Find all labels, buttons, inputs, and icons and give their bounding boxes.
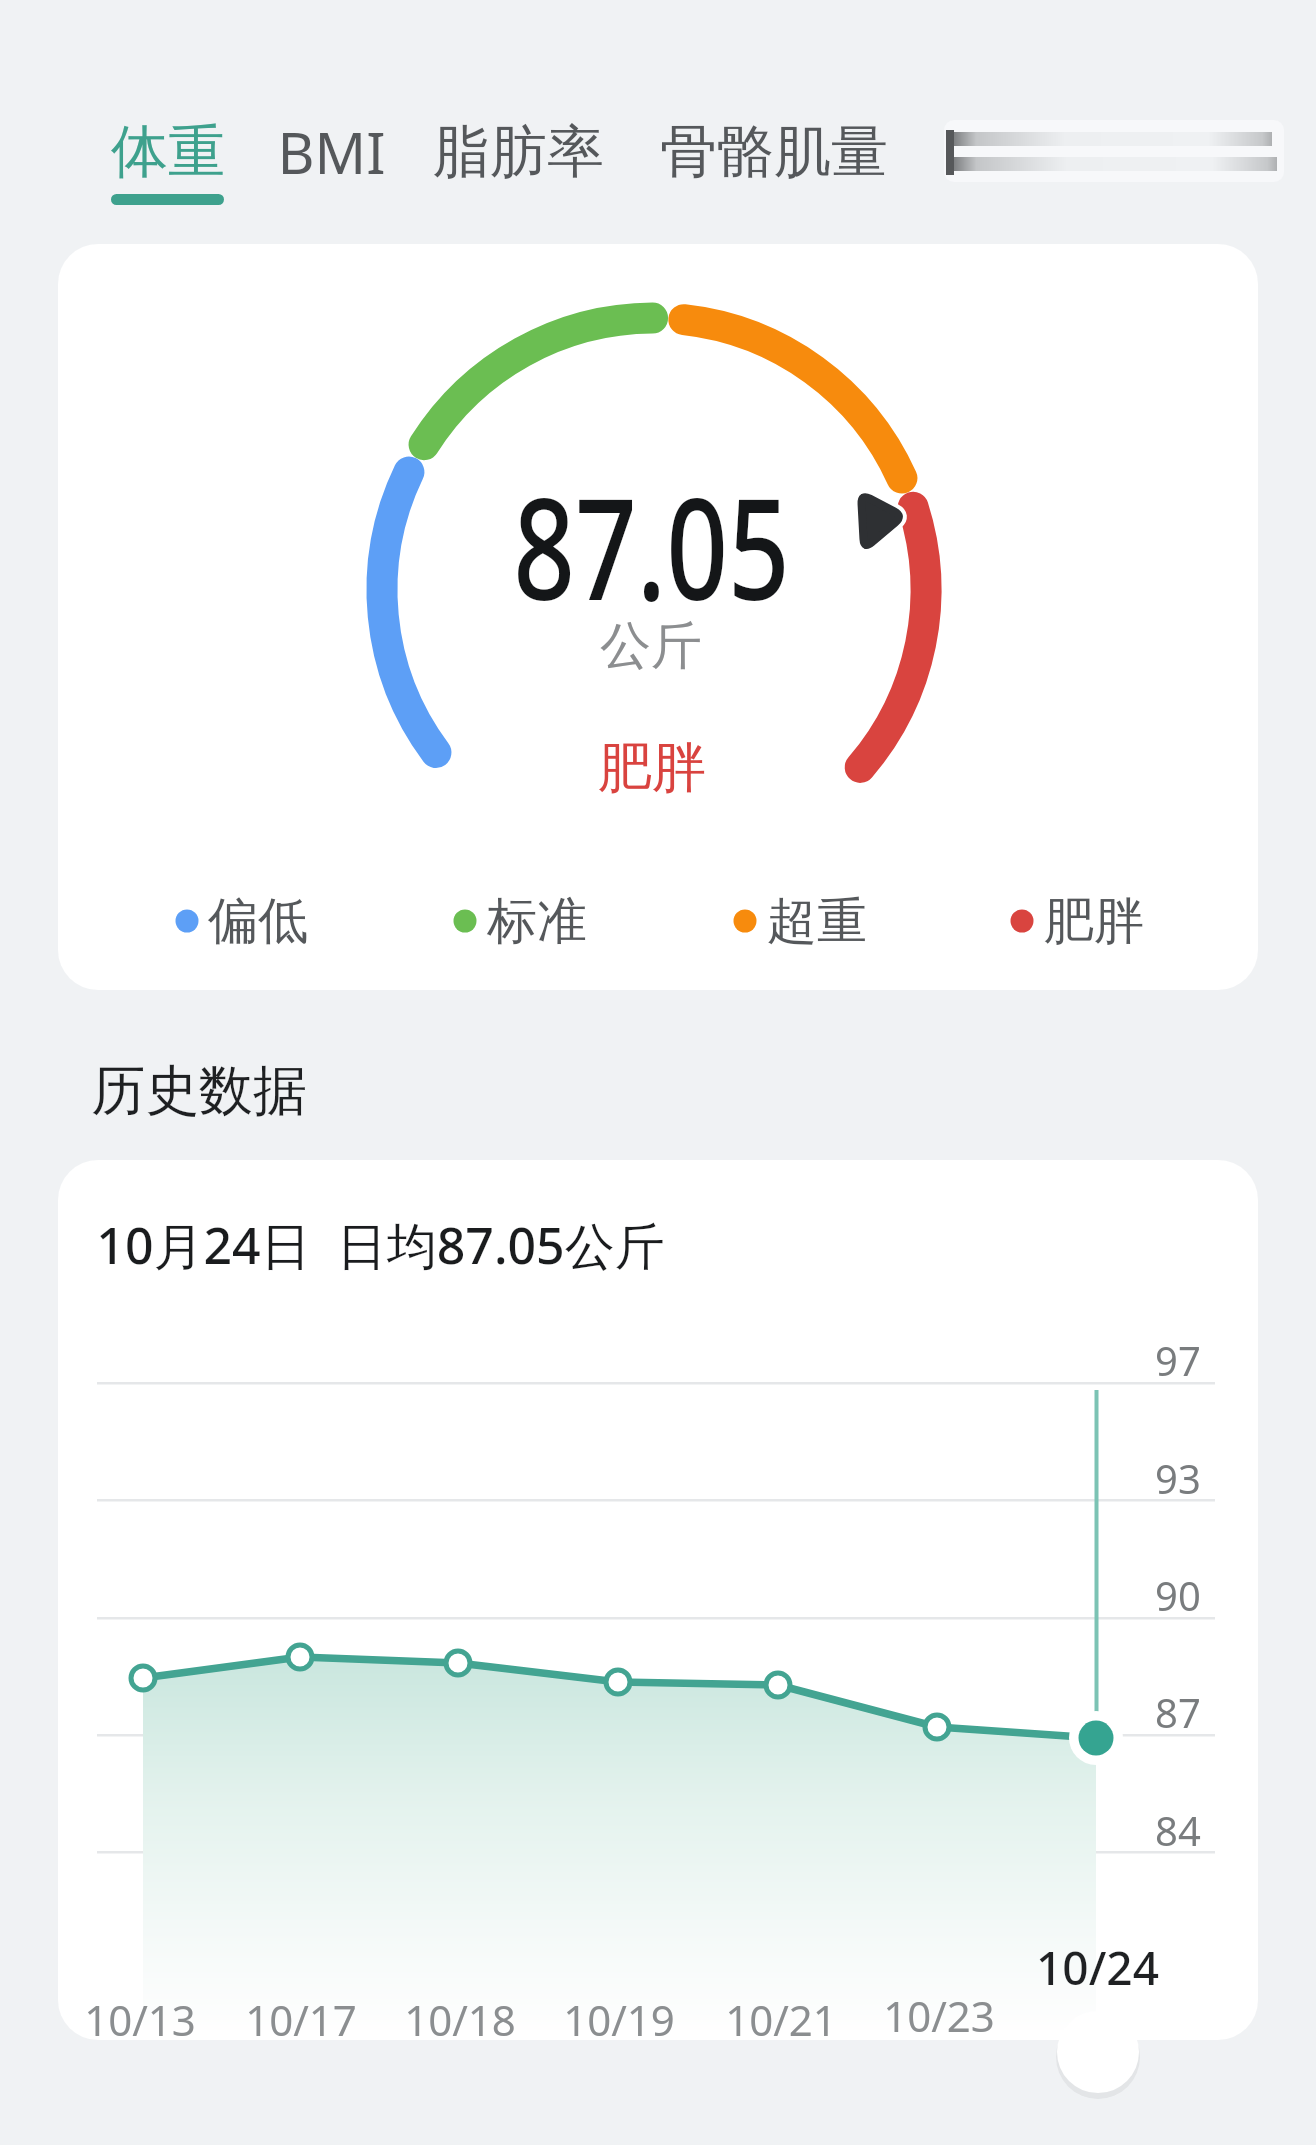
staticText: 10/17 (245, 1991, 357, 2048)
button[interactable]: 骨骼肌量 (633, 109, 914, 195)
button[interactable]: BMI (222, 109, 440, 195)
staticText: 87 (1155, 1685, 1201, 1739)
staticText: 历史数据 (91, 1057, 307, 1125)
staticText: 10/21 (725, 1991, 837, 2048)
staticText: 90 (1155, 1568, 1201, 1622)
staticText: 84 (1155, 1803, 1201, 1857)
button[interactable]: 脂肪率 (409, 109, 627, 195)
staticText: 偏低 (208, 890, 308, 953)
button[interactable]: 体重 (90, 109, 245, 195)
staticText: 超重 (767, 890, 867, 953)
staticText: 骨骼肌量 (660, 116, 888, 188)
staticText: 10/19 (563, 1991, 675, 2048)
staticText: 体重 (111, 116, 225, 188)
staticText: 10/13 (84, 1991, 196, 2048)
button[interactable] (1057, 2011, 1139, 2093)
staticText: 10/23 (883, 1987, 995, 2044)
staticText: 10/24 (1036, 1936, 1159, 1999)
staticText: 93 (1155, 1451, 1201, 1505)
staticText: 标准 (487, 890, 587, 953)
staticText: 脂肪率 (433, 116, 604, 188)
staticText: 87.05 (513, 451, 790, 642)
staticText: 公斤 (600, 614, 702, 678)
staticText: 10/18 (404, 1991, 516, 2048)
staticText: BMI (277, 113, 386, 191)
staticText: 肥胖 (598, 734, 706, 802)
staticText: 肥胖 (1044, 890, 1144, 953)
staticText: 10月24日 日均87.05公斤 (96, 1211, 665, 1279)
staticText: 97 (1155, 1333, 1201, 1387)
